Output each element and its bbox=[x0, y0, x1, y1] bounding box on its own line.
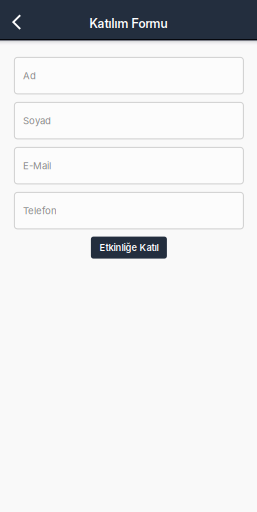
staticText: Soyad bbox=[23, 115, 51, 126]
button[interactable]: Ad bbox=[14, 57, 243, 94]
button[interactable]: Etkinliğe Katıl bbox=[91, 237, 167, 259]
button[interactable]: Telefon bbox=[14, 192, 243, 229]
staticText: E-Mail bbox=[23, 160, 51, 171]
staticText: Ad bbox=[23, 70, 36, 81]
button[interactable]: Soyad bbox=[14, 102, 243, 139]
staticText: Katılım Formu bbox=[89, 16, 167, 31]
button[interactable]: E-Mail bbox=[14, 147, 243, 184]
button[interactable]: Back bbox=[0, 0, 32, 39]
staticText: Telefon bbox=[23, 205, 57, 216]
staticText: Etkinliğe Katıl bbox=[99, 242, 158, 253]
